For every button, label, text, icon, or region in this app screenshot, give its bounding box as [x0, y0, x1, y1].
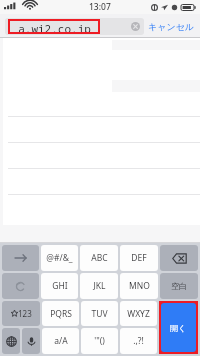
button[interactable]: WXYZ [120, 301, 157, 326]
button[interactable]: Dictation [22, 328, 40, 354]
button[interactable]: 開く [161, 303, 196, 352]
staticText: @#/&_ [46, 252, 73, 264]
staticText: 13:07 [89, 1, 111, 13]
button[interactable]: a/A [42, 328, 79, 354]
button[interactable]: JKL [80, 273, 118, 299]
staticText: PQRS [50, 308, 72, 320]
button[interactable]: PQRS [42, 301, 79, 326]
staticText: a/A [54, 335, 68, 347]
staticText: ABC [91, 252, 108, 264]
staticText: 123 [18, 308, 32, 319]
button[interactable]: Undo [2, 273, 39, 299]
button[interactable]: 空白 [160, 273, 198, 299]
staticText: a.wi2.co.jp [18, 21, 91, 32]
button[interactable]: ABC [80, 245, 118, 271]
button[interactable]: Clear text [131, 22, 140, 31]
button[interactable]: TUV [81, 301, 118, 326]
staticText: キャンセル [148, 21, 195, 32]
button[interactable]: Change keyboard [2, 328, 20, 354]
staticText: 開く [170, 323, 187, 333]
button[interactable]: GHI [41, 273, 78, 299]
button[interactable]: Delete [160, 245, 198, 271]
staticText: JKL [93, 280, 106, 292]
button[interactable]: DEF [120, 245, 158, 271]
staticText: DEF [131, 252, 147, 264]
staticText: '"() [94, 335, 105, 347]
button[interactable]: @#/&_ [41, 245, 78, 271]
button[interactable]: .,?! [120, 328, 157, 354]
button[interactable]: '"() [81, 328, 118, 354]
staticText: .,?! [133, 335, 144, 347]
button[interactable]: キャンセル [148, 14, 195, 38]
button[interactable]: Next field [2, 245, 39, 271]
button[interactable]: 123 [2, 301, 40, 326]
button[interactable]: a.wi2.co.jp [5, 18, 144, 35]
staticText: WXYZ [127, 308, 150, 320]
staticText: MNO [129, 280, 150, 292]
button[interactable]: MNO [120, 273, 158, 299]
staticText: GHI [52, 280, 68, 292]
staticText: TUV [91, 308, 108, 320]
staticText: 空白 [171, 281, 187, 291]
